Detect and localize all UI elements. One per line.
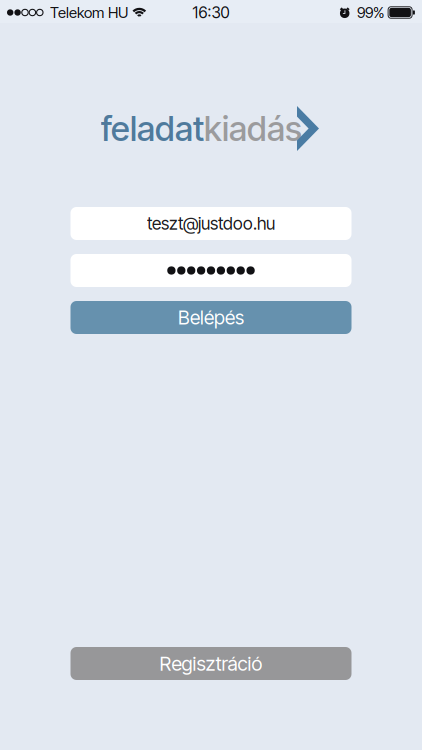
staticText: Regisztráció bbox=[159, 652, 262, 675]
button[interactable]: Regisztráció bbox=[70, 647, 351, 680]
staticText: kiadás bbox=[204, 108, 302, 149]
staticText: 16:30 bbox=[192, 3, 229, 22]
staticText: Telekom HU bbox=[50, 3, 128, 22]
staticText: Belépés bbox=[178, 306, 244, 329]
staticText: teszt@justdoo.hu bbox=[147, 213, 275, 234]
staticText: 99% bbox=[357, 3, 384, 22]
button[interactable] bbox=[70, 254, 351, 287]
button[interactable]: teszt@justdoo.hu bbox=[70, 207, 351, 240]
staticText: feladat bbox=[101, 108, 204, 149]
button[interactable]: Belépés bbox=[70, 301, 351, 334]
